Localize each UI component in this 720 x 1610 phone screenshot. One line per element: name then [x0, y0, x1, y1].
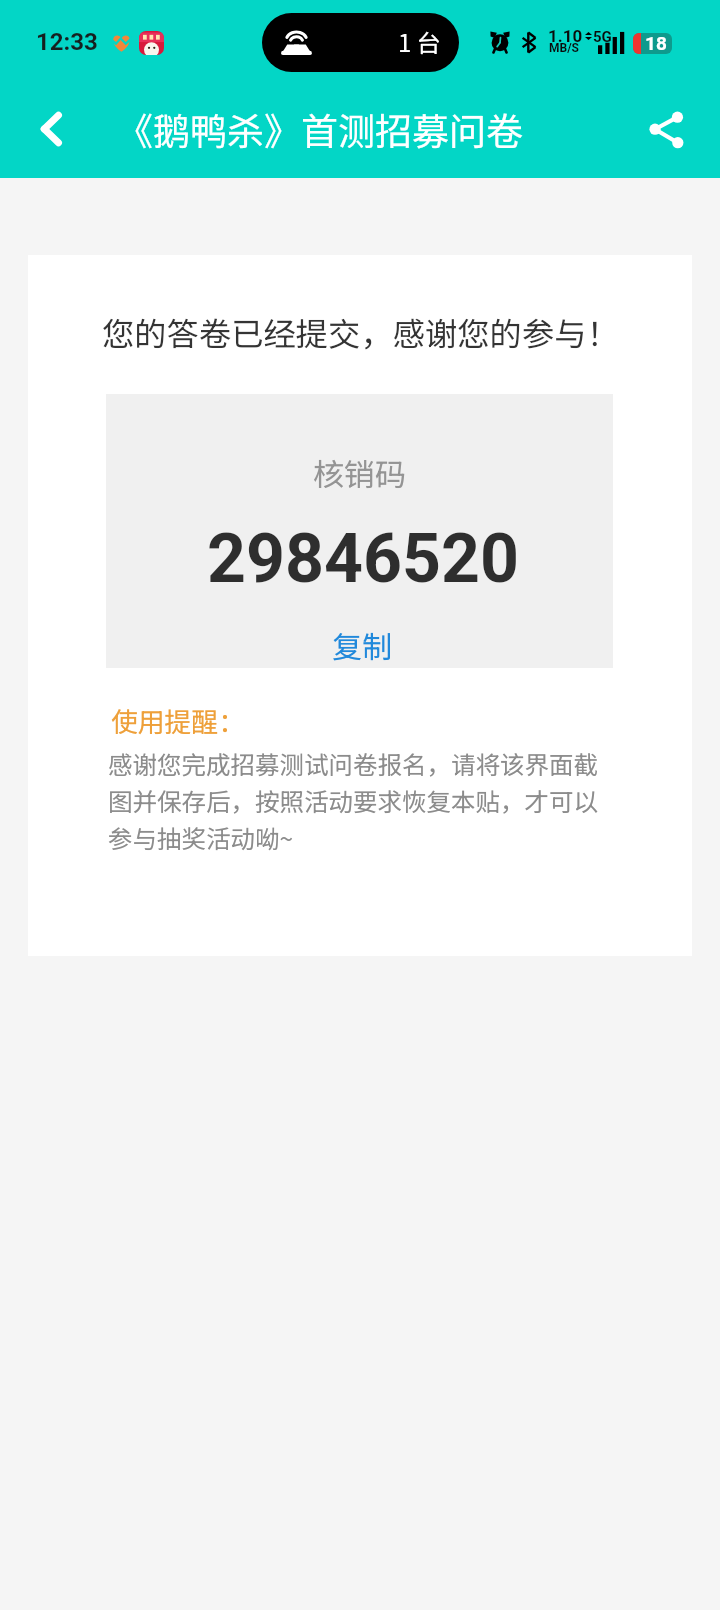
staticText: 12:33 — [36, 26, 98, 56]
staticText: 复制 — [332, 632, 392, 665]
button[interactable]: Back — [14, 86, 90, 178]
staticText: 《鹅鸭杀》首测招募问卷 — [116, 110, 523, 154]
staticText: 您的答卷已经提交，感谢您的参与！ — [102, 316, 619, 354]
staticText: 1.10 — [548, 26, 583, 46]
button[interactable]: Share — [630, 86, 720, 178]
staticText: 感谢您完成招募测试问卷报名，请将该界面截图并保存后，按照活动要求恢复本贴，才可以… — [108, 744, 608, 855]
staticText: 核销码 — [313, 459, 406, 493]
staticText: MB/S — [549, 41, 580, 55]
button[interactable]: 复制 — [308, 628, 416, 669]
staticText: 5G — [593, 28, 612, 46]
staticText: 1 台 — [398, 28, 441, 58]
staticText: 29846520 — [207, 519, 520, 599]
staticText: 使用提醒： — [111, 708, 245, 738]
staticText: 18 — [645, 34, 667, 54]
